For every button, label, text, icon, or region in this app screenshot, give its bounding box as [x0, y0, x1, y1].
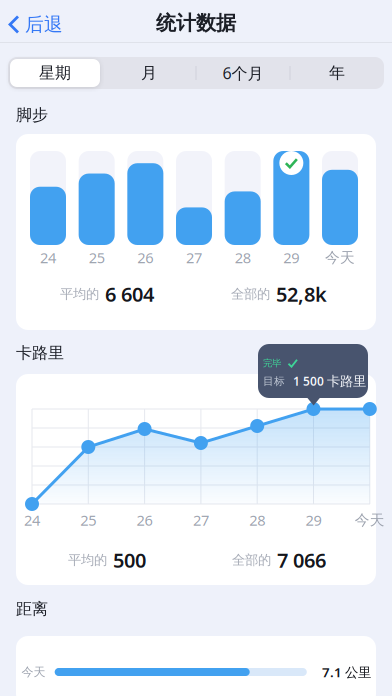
staticText: 脚步: [16, 105, 48, 125]
staticText: 卡路里: [327, 373, 366, 389]
staticText: 平均的: [60, 286, 99, 302]
staticText: 24: [24, 510, 40, 530]
staticText: 统计数据: [156, 11, 236, 35]
staticText: 6个月: [222, 62, 263, 84]
staticText: 27: [193, 510, 209, 530]
staticText: 卡路里: [16, 343, 64, 363]
staticText: 26: [137, 510, 153, 530]
staticText: 今天: [325, 248, 355, 266]
staticText: 全部的: [231, 286, 270, 302]
staticText: 1 500: [293, 373, 324, 389]
button[interactable]: 后退: [0, 0, 55, 23]
staticText: 7.1 公里: [322, 663, 371, 681]
button[interactable]: 年: [290, 57, 384, 89]
staticText: 29: [305, 510, 321, 530]
staticText: 26: [137, 248, 153, 267]
staticText: 今天: [355, 511, 385, 529]
button[interactable]: 星期: [8, 57, 102, 89]
staticText: 平均的: [68, 552, 107, 568]
staticText: 24: [40, 248, 56, 267]
staticText: 完毕: [263, 357, 281, 369]
staticText: 年: [329, 63, 345, 83]
staticText: 距离: [16, 599, 48, 619]
staticText: 25: [89, 248, 105, 267]
staticText: 29: [283, 248, 299, 267]
staticText: 全部的: [232, 552, 271, 568]
staticText: 25: [80, 510, 96, 530]
staticText: 7 066: [277, 547, 326, 573]
staticText: 6 604: [105, 281, 154, 307]
staticText: 28: [235, 248, 251, 267]
staticText: 27: [186, 248, 202, 267]
staticText: 500: [113, 547, 146, 573]
staticText: 52,8k: [276, 281, 327, 307]
staticText: 28: [249, 510, 265, 530]
staticText: 星期: [39, 63, 71, 83]
button[interactable]: 月: [102, 57, 196, 89]
staticText: 今天: [21, 665, 45, 679]
button[interactable]: 6个月: [196, 57, 290, 89]
staticText: 目标: [263, 375, 285, 388]
staticText: 后退: [25, 13, 63, 36]
staticText: 月: [141, 63, 157, 83]
